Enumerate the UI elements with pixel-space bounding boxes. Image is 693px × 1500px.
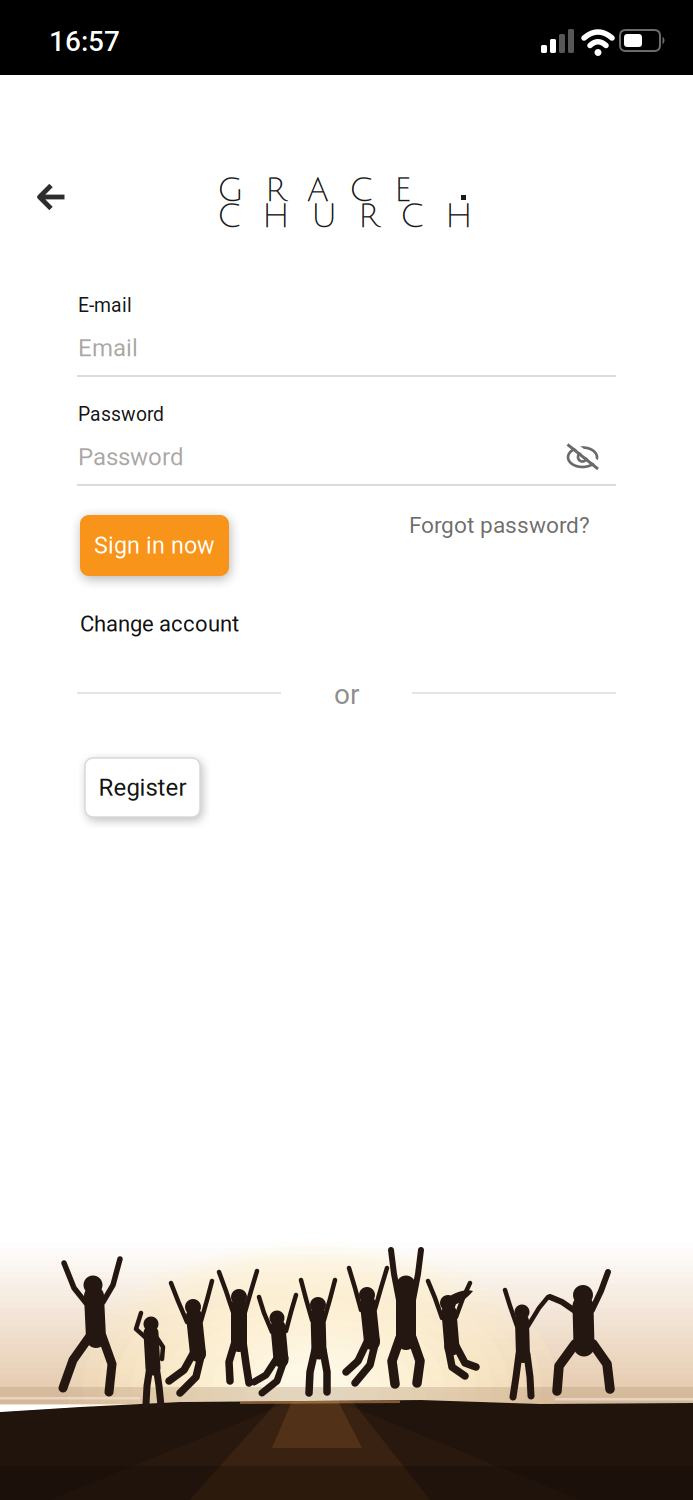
button[interactable]: Register <box>85 758 200 817</box>
button[interactable]: Show password <box>566 444 599 470</box>
button[interactable]: Sign in now <box>80 515 229 576</box>
staticText: Email <box>78 334 138 362</box>
staticText: Change account <box>80 611 239 637</box>
staticText: Forgot password? <box>409 512 590 539</box>
staticText: 16:57 <box>49 25 120 58</box>
button[interactable]: Back <box>24 171 80 223</box>
staticText: or <box>334 678 359 711</box>
staticText: Sign in now <box>94 532 215 559</box>
button[interactable]: Change account <box>80 611 239 637</box>
staticText: CHURCH <box>217 199 473 235</box>
staticText: GRACE <box>217 173 411 209</box>
staticText: Register <box>98 773 186 801</box>
button[interactable]: Forgot password? <box>409 512 590 539</box>
staticText: Password <box>78 403 164 426</box>
staticText: E-mail <box>78 294 132 317</box>
staticText: Password <box>78 443 184 471</box>
